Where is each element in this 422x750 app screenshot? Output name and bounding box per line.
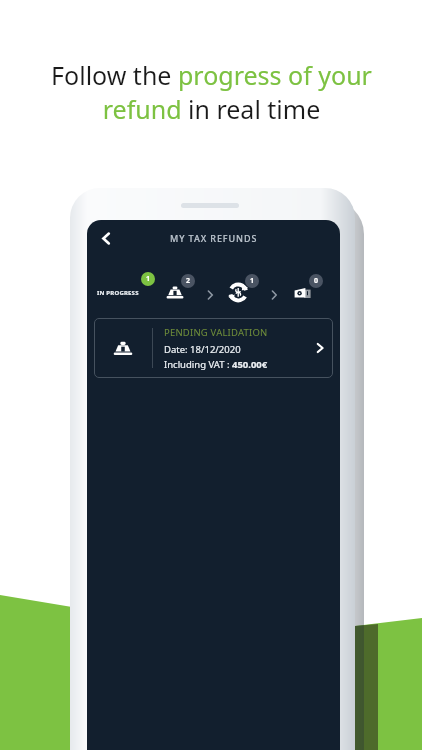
button[interactable]: IN PROGRESS bbox=[97, 266, 156, 306]
staticText: IN PROGRESS bbox=[97, 289, 139, 297]
button[interactable]: Back bbox=[93, 225, 119, 251]
staticText: 2 bbox=[186, 276, 191, 286]
button[interactable]: Stamped bbox=[156, 266, 200, 306]
staticText: 1 bbox=[146, 274, 151, 284]
staticText: 0 bbox=[314, 276, 319, 286]
button[interactable]: PENDING VALIDATION bbox=[94, 318, 333, 378]
button[interactable]: Paid bbox=[284, 266, 328, 306]
staticText: Follow the progress of your refund in re… bbox=[30, 58, 393, 126]
button[interactable]: Refund processing bbox=[220, 266, 264, 306]
staticText: MY TAX REFUNDS bbox=[170, 232, 258, 244]
staticText: PENDING VALIDATION bbox=[164, 326, 268, 339]
staticText: 1 bbox=[250, 276, 255, 286]
staticText: Date: 18/12/2020 bbox=[164, 343, 241, 356]
staticText: Including VAT : 450.00€ bbox=[164, 358, 268, 371]
